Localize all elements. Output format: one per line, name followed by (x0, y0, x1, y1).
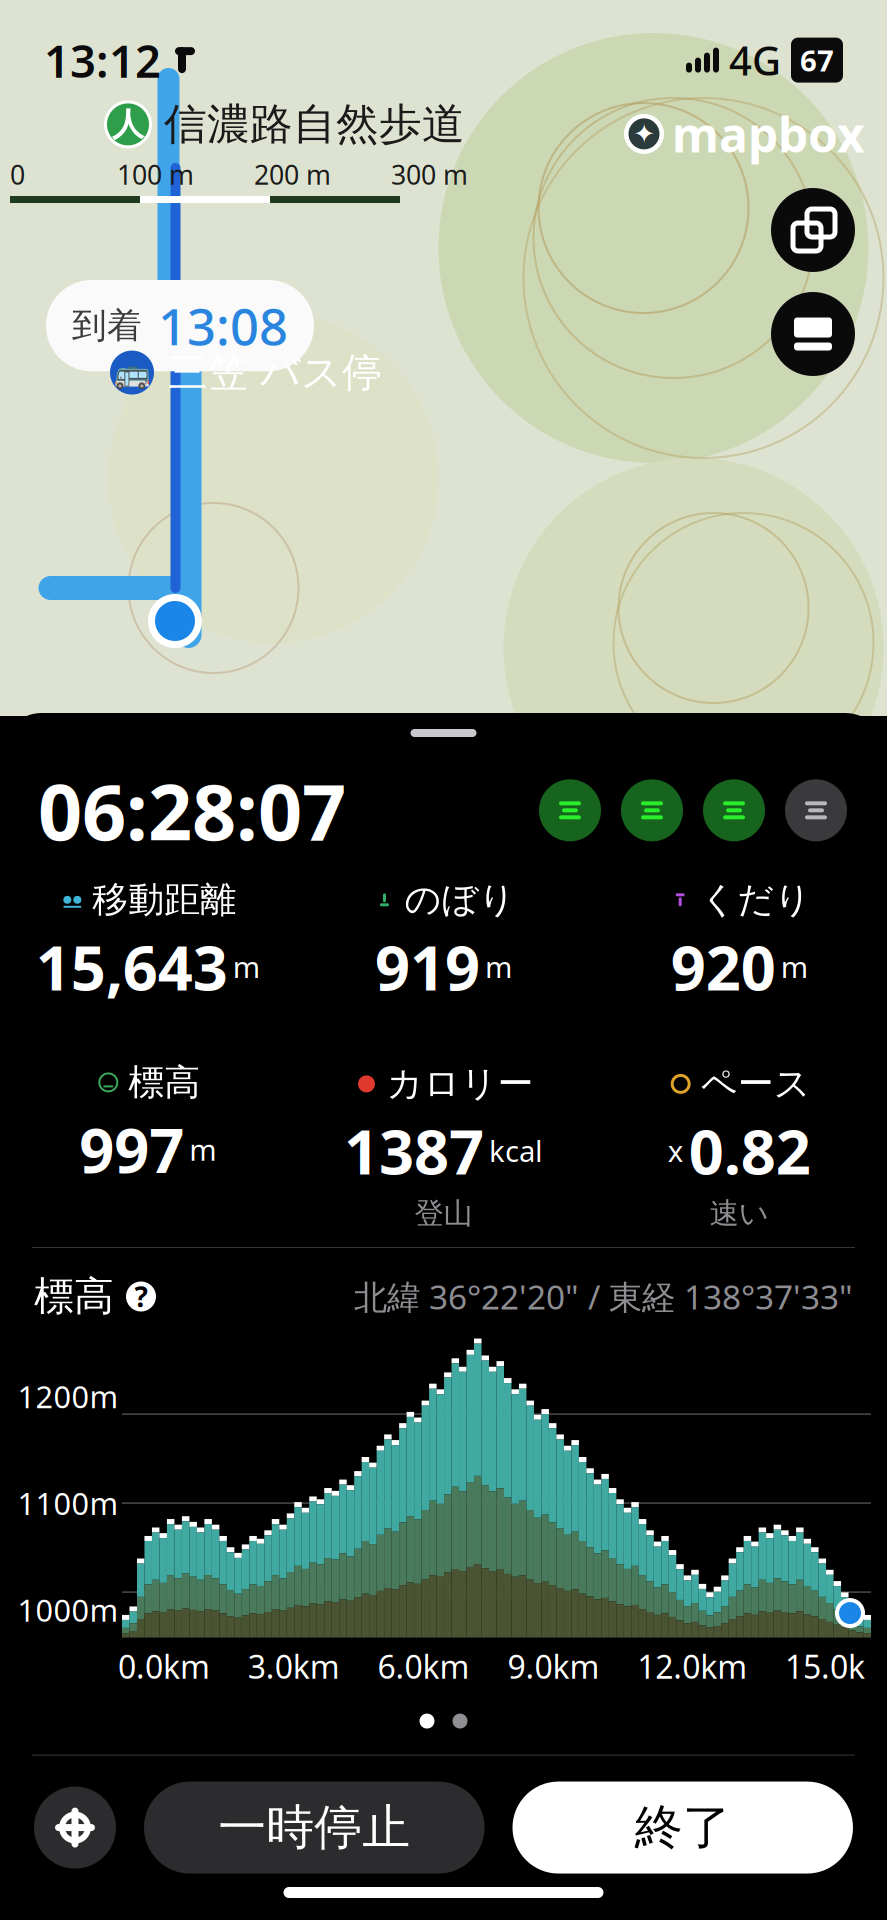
staticText: ペース (701, 1062, 811, 1106)
staticText: 100 m (117, 157, 194, 192)
staticText: 920 (671, 926, 776, 1007)
staticText: 🚌 (113, 356, 150, 389)
staticText: m (781, 947, 808, 986)
staticText: m (485, 947, 512, 986)
staticText: 13:08 (158, 292, 288, 359)
staticText: 200 m (254, 157, 331, 192)
staticText: 終了 (635, 1798, 731, 1857)
staticText: 3.0km (248, 1645, 340, 1688)
staticText: x (668, 1131, 684, 1170)
button[interactable]: 終了 (512, 1782, 853, 1874)
staticText: 919 (375, 926, 480, 1007)
staticText: 1100m (17, 1483, 118, 1523)
button[interactable]: Map layers (771, 292, 855, 376)
staticText: のぼり (404, 878, 515, 922)
staticText: 15,643 (36, 926, 228, 1007)
staticText: 速い (710, 1195, 769, 1231)
staticText: 0.0km (118, 1645, 210, 1688)
staticText: 300 m (391, 157, 468, 192)
staticText: 一時停止 (218, 1798, 410, 1857)
staticText: 997 (79, 1108, 184, 1190)
staticText: 1200m (17, 1376, 118, 1417)
staticText: くだり (700, 878, 811, 922)
staticText: 1387 (344, 1110, 484, 1191)
button[interactable]: Waypoints (537, 777, 603, 843)
staticText: カロリー (386, 1062, 533, 1106)
staticText: m (233, 947, 260, 986)
staticText: 0.82 (689, 1110, 811, 1191)
button[interactable]: Settings (34, 1787, 116, 1869)
staticText: 標高 (34, 1272, 114, 1321)
staticText: ? (134, 1278, 147, 1315)
staticText: mapbox (672, 102, 865, 166)
staticText: 移動距離 (92, 878, 236, 922)
staticText: 4G (729, 33, 781, 87)
staticText: 6.0km (378, 1645, 470, 1688)
staticText: 到着 (72, 304, 142, 347)
staticText: 北緯 36°22'20" / 東経 138°37'33" (354, 1274, 853, 1319)
staticText: 標高 (128, 1060, 200, 1104)
staticText: 06:28:07 (38, 759, 346, 862)
button[interactable]: Reroute (701, 777, 767, 843)
button[interactable]: About elevation (126, 1278, 156, 1315)
staticText: 人 (112, 105, 144, 144)
staticText: ✦ (633, 119, 655, 149)
staticText: 信濃路自然歩道 (164, 98, 465, 151)
staticText: 67 (800, 41, 834, 80)
staticText: 9.0km (507, 1645, 599, 1688)
staticText: 1000m (17, 1589, 118, 1630)
staticText: 0 (10, 157, 25, 192)
staticText: 13:12 (44, 30, 161, 90)
staticText: kcal (489, 1131, 543, 1170)
staticText: 三笠 バス停 (168, 348, 382, 397)
button[interactable]: 一時停止 (144, 1782, 484, 1874)
staticText: 登山 (414, 1195, 472, 1231)
staticText: m (189, 1130, 216, 1169)
staticText: 15.0k (785, 1645, 865, 1688)
staticText: 12.0km (637, 1645, 747, 1688)
button[interactable]: Members (783, 777, 849, 843)
button[interactable]: Resize map (771, 188, 855, 272)
button[interactable]: Post note (619, 777, 685, 843)
